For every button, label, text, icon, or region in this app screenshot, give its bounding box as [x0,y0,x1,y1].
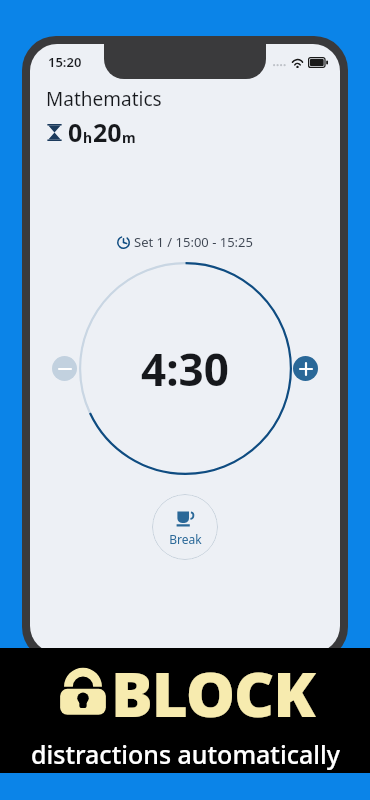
button[interactable]: Decrease timer [52,356,77,381]
staticText: Break [169,531,202,547]
staticText: h [83,128,93,147]
staticText: 15:20 [48,53,82,71]
staticText: Mathematics [46,86,162,112]
staticText: distractions automatically [31,737,340,771]
staticText: m [122,128,136,147]
staticText: 20 [93,115,122,149]
staticText: BLOCK [111,651,315,735]
staticText: Set 1 / 15:00 - 15:25 [134,233,253,251]
staticText: 0 [68,115,83,149]
button[interactable]: Break [152,494,218,560]
staticText: 4:30 [141,339,229,399]
button[interactable]: Increase timer [293,356,318,381]
